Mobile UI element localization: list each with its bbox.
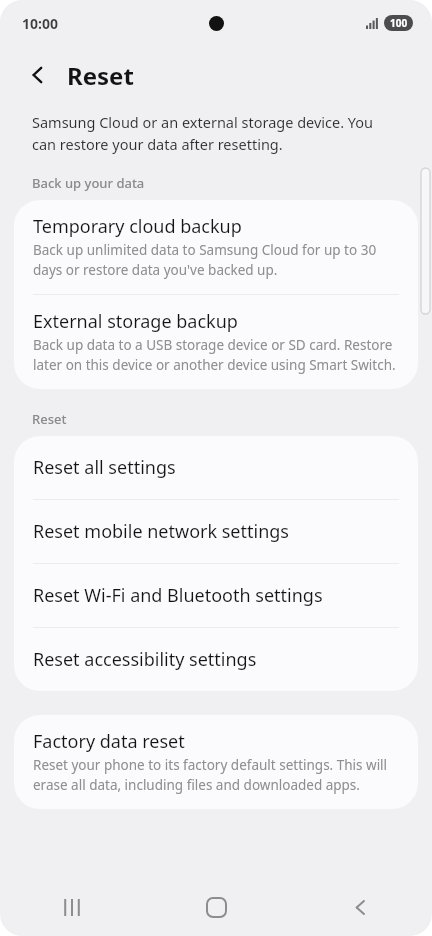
staticText: Reset Wi-Fi and Bluetooth settings (33, 583, 323, 608)
staticText: Reset all settings (33, 455, 176, 480)
button[interactable]: Reset all settings (14, 436, 418, 499)
staticText: Temporary cloud backup (33, 214, 242, 239)
staticText: 100 (390, 16, 408, 30)
staticText: Reset (32, 410, 67, 428)
staticText: Reset your phone to its factory default … (33, 756, 396, 794)
staticText: Reset mobile network settings (33, 519, 289, 544)
staticText: Reset (67, 59, 134, 92)
staticText: Factory data reset (33, 729, 185, 754)
button[interactable]: Recent apps (0, 878, 144, 936)
button[interactable]: External storage backup (14, 295, 418, 389)
staticText: 10:00 (22, 14, 58, 33)
staticText: Reset accessibility settings (33, 647, 257, 672)
button[interactable]: Reset Wi-Fi and Bluetooth settings (14, 564, 418, 627)
staticText: Back up data to a USB storage device or … (33, 336, 396, 374)
button[interactable]: Reset mobile network settings (14, 500, 418, 563)
staticText: Back up unlimited data to Samsung Cloud … (33, 241, 396, 279)
button[interactable]: Reset accessibility settings (14, 628, 418, 691)
button[interactable]: Temporary cloud backup (14, 200, 418, 294)
staticText: External storage backup (33, 309, 238, 334)
button[interactable]: Back (20, 57, 56, 93)
button[interactable]: Factory data reset (14, 715, 418, 809)
button[interactable]: Back (288, 878, 432, 936)
button[interactable]: Home (144, 878, 288, 936)
staticText: Samsung Cloud or an external storage dev… (32, 112, 394, 154)
staticText: Back up your data (32, 174, 145, 192)
